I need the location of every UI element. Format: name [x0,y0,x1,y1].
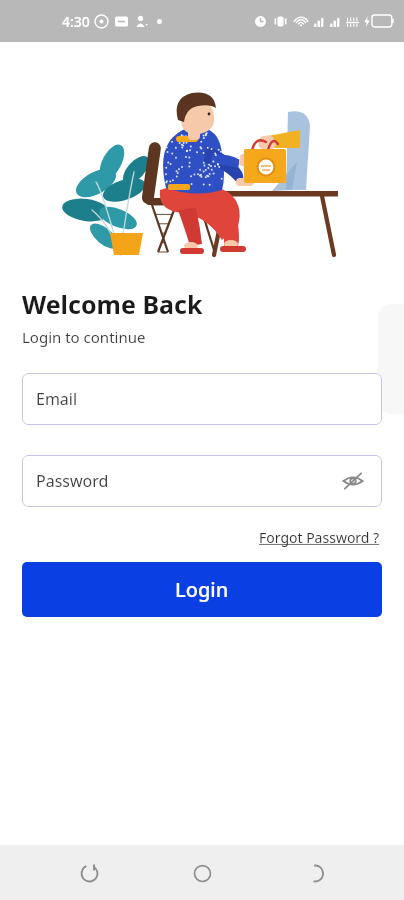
button[interactable]: Login [22,562,382,617]
button[interactable]: Home [178,849,226,897]
staticText: Password [36,470,109,492]
button[interactable]: Forgot Password ? [257,526,382,549]
button[interactable]: Password [22,455,382,507]
button[interactable]: Email [22,373,382,425]
staticText: Login to continue [22,327,146,347]
button[interactable]: Recent apps [291,849,339,897]
staticText: Welcome Back [22,287,203,321]
button[interactable]: Back [65,849,113,897]
staticText: Forgot Password ? [259,528,380,547]
staticText: 4:30 [62,12,90,31]
staticText: Email [36,388,78,410]
staticText: Login [175,576,229,603]
button[interactable]: Show password [338,466,368,496]
